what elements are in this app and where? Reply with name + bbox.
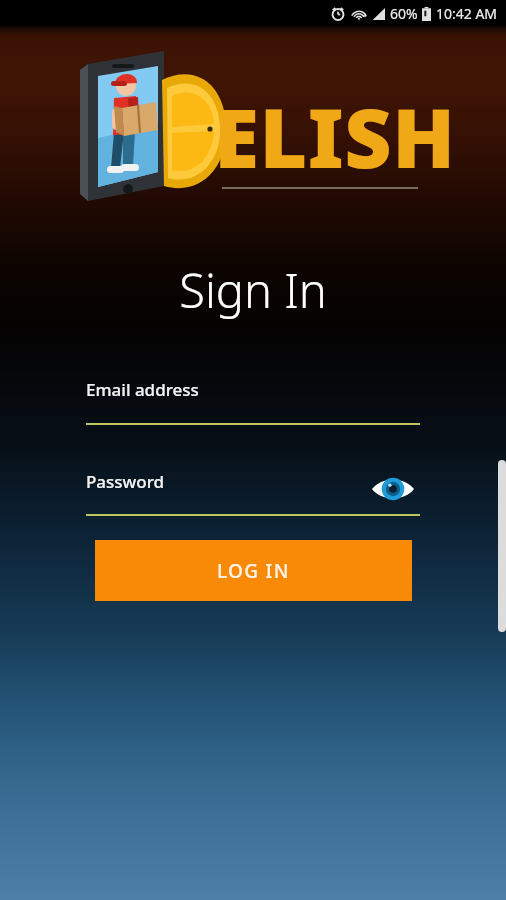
staticText: Sign In — [179, 258, 327, 322]
staticText: 60% — [390, 4, 418, 23]
button[interactable] — [86, 462, 366, 514]
button[interactable] — [86, 370, 420, 426]
staticText: Email address — [86, 378, 199, 401]
staticText: ELISH — [214, 80, 456, 192]
staticText: Password — [86, 470, 165, 493]
button[interactable]: Show password — [368, 469, 418, 509]
staticText: LOG IN — [217, 558, 290, 584]
button[interactable]: LOG IN — [95, 540, 412, 601]
staticText: 10:42 AM — [436, 4, 498, 23]
